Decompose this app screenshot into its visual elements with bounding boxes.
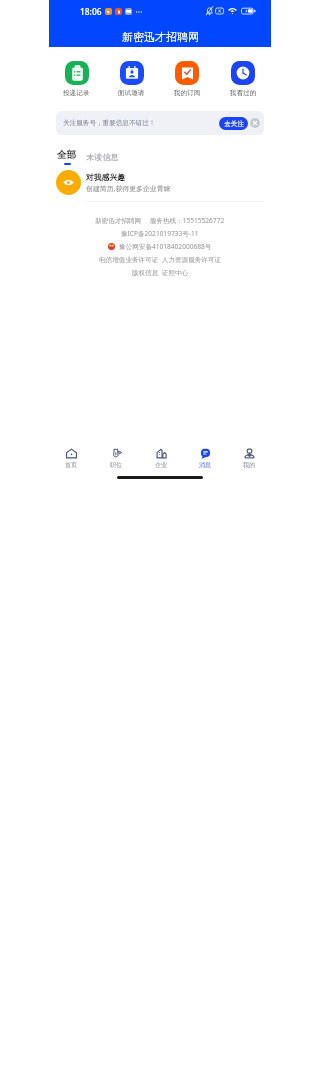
staticText: 对我感兴趣 xyxy=(86,172,125,182)
staticText: 企业 xyxy=(155,461,168,469)
button[interactable]: 关注服务号，重要信息不错过！ xyxy=(56,111,264,135)
staticText: 首页 xyxy=(65,461,78,469)
staticText: 面试邀请 xyxy=(118,89,145,97)
staticText: 新密迅才招聘网 服务热线：15515526772 xyxy=(95,216,225,225)
staticText: 关注服务号，重要信息不错过！ xyxy=(63,119,156,127)
button[interactable]: 我的订阅 xyxy=(159,61,215,97)
button[interactable]: 首页 xyxy=(49,448,94,469)
staticText: 全部 xyxy=(57,149,77,161)
staticText: 创建简历,获得更多企业青睐 xyxy=(86,184,171,193)
staticText: 我的订阅 xyxy=(174,89,201,97)
staticText: 未读信息 xyxy=(86,152,119,162)
button[interactable]: 面试邀请 xyxy=(104,61,159,97)
staticText: 我看过的 xyxy=(230,89,257,97)
staticText: 职位 xyxy=(110,461,123,469)
button[interactable]: 全部 xyxy=(57,149,77,165)
button[interactable]: 消息 xyxy=(183,448,227,469)
staticText: 新密迅才招聘网 xyxy=(122,30,199,44)
staticText: 豫ICP备2021019733号-11 xyxy=(121,229,199,238)
staticText: 消息 xyxy=(199,461,212,469)
button[interactable]: 未读信息 xyxy=(86,155,119,165)
button[interactable]: 关闭 xyxy=(250,118,260,128)
button[interactable]: 去关注 xyxy=(219,117,248,130)
staticText: 电信增值业务许可证 人力资源服务许可证 xyxy=(99,255,222,264)
staticText: 投递记录 xyxy=(63,89,90,97)
button[interactable]: 我看过的 xyxy=(215,61,271,97)
button[interactable]: 投递记录 xyxy=(49,61,104,97)
button[interactable]: 企业 xyxy=(139,448,183,469)
button[interactable]: 我的 xyxy=(227,448,271,469)
button[interactable]: 对我感兴趣 xyxy=(56,170,271,195)
staticText: 版权信息 证照中心 xyxy=(132,268,189,277)
button[interactable]: 职位 xyxy=(94,448,139,469)
staticText: 我的 xyxy=(243,461,256,469)
staticText: 去关注 xyxy=(224,120,244,128)
staticText: 18:06 xyxy=(80,6,102,17)
staticText: 豫公网安备41018402000688号 xyxy=(119,242,212,251)
